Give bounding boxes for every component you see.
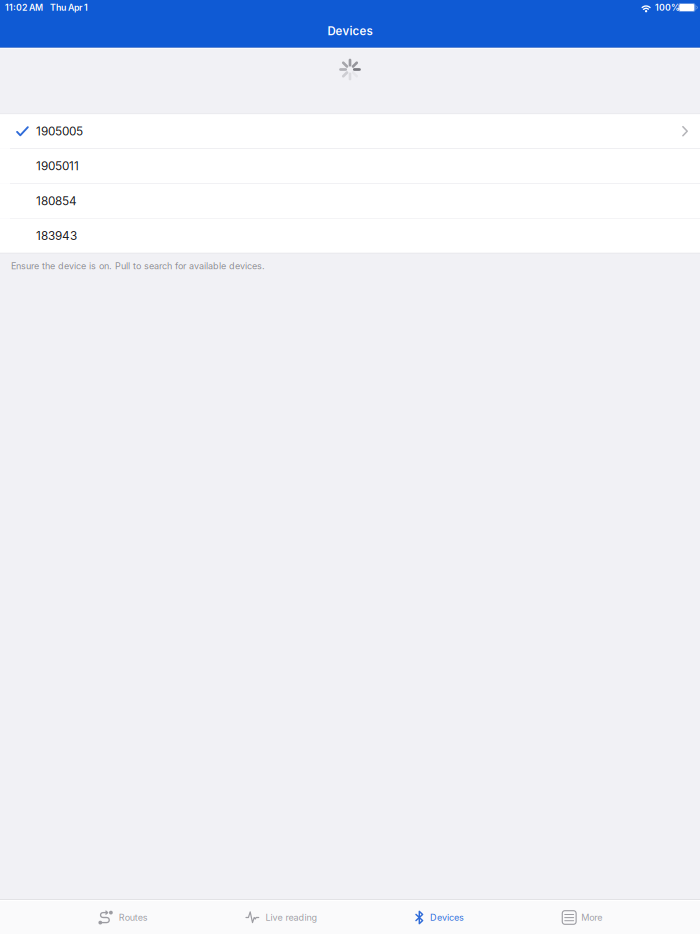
staticText: 183943 <box>36 229 77 243</box>
button[interactable]: 1905005 <box>0 114 700 148</box>
button[interactable]: Devices <box>415 900 464 934</box>
button[interactable]: 1905011 <box>0 149 700 183</box>
button[interactable]: Live reading <box>245 900 317 934</box>
staticText: Ensure the device is on. Pull to search … <box>11 260 265 271</box>
staticText: Devices <box>430 912 464 923</box>
staticText: 100% <box>655 2 680 13</box>
staticText: Devices <box>327 24 372 38</box>
button[interactable]: More <box>562 900 602 934</box>
staticText: Live reading <box>265 912 317 923</box>
button[interactable]: 183943 <box>0 219 700 253</box>
staticText: 1905005 <box>36 124 83 138</box>
button[interactable]: 180854 <box>0 184 700 218</box>
staticText: More <box>581 912 602 923</box>
staticText: Thu Apr 1 <box>50 2 88 13</box>
staticText: 1905011 <box>36 159 79 173</box>
staticText: 11:02 AM <box>5 2 43 13</box>
button[interactable]: Routes <box>98 900 148 934</box>
staticText: 180854 <box>36 194 77 208</box>
staticText: Routes <box>119 912 148 923</box>
